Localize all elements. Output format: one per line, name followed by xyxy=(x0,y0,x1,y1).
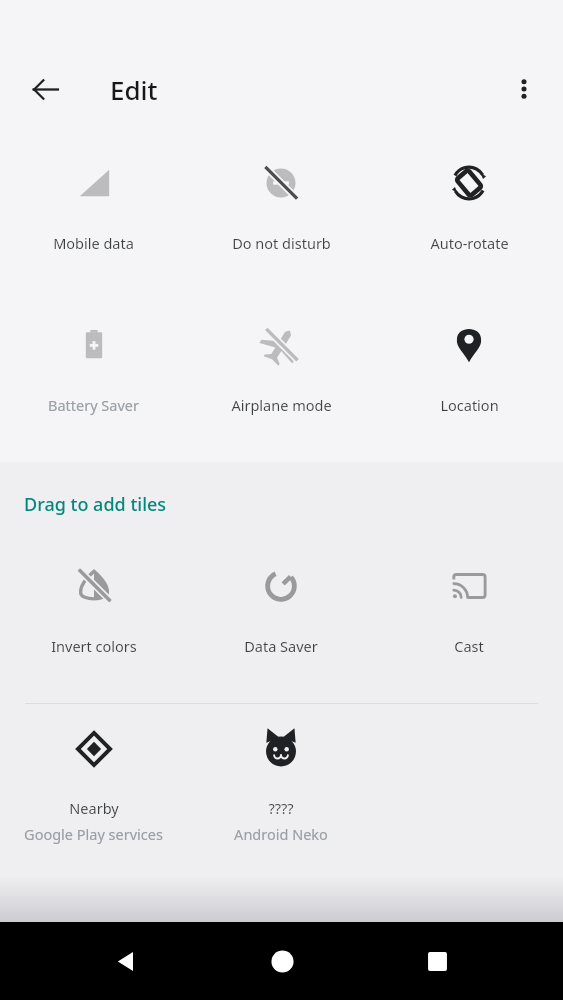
button[interactable]: Do not disturb xyxy=(187,138,375,300)
button[interactable]: Back xyxy=(19,63,71,115)
staticText: Battery Saver xyxy=(48,395,139,415)
staticText: Do not disturb xyxy=(232,233,331,253)
button[interactable]: Data Saver xyxy=(187,541,375,703)
staticText: Drag to add tiles xyxy=(24,492,167,517)
button[interactable]: Battery Saver xyxy=(0,300,187,462)
button[interactable]: Mobile data xyxy=(0,138,187,300)
staticText: Nearby xyxy=(69,798,119,818)
staticText: Data Saver xyxy=(244,636,318,656)
button[interactable]: ???? xyxy=(187,704,375,844)
staticText: Android Neko xyxy=(234,824,328,844)
button[interactable]: Cast xyxy=(375,541,563,703)
staticText: Edit xyxy=(110,72,158,107)
button[interactable]: Auto-rotate xyxy=(375,138,563,300)
staticText: Google Play services xyxy=(24,824,163,844)
staticText: Invert colors xyxy=(51,636,137,656)
staticText: Location xyxy=(440,395,499,415)
button[interactable]: Home xyxy=(252,931,312,991)
staticText: Mobile data xyxy=(53,233,134,253)
button[interactable]: Invert colors xyxy=(0,541,187,703)
staticText: Cast xyxy=(454,636,484,656)
button[interactable]: Location xyxy=(375,300,563,462)
staticText: Airplane mode xyxy=(231,395,332,415)
button[interactable]: Airplane mode xyxy=(187,300,375,462)
staticText: Auto-rotate xyxy=(430,233,509,253)
button[interactable]: Back xyxy=(96,931,156,991)
button[interactable]: Recents xyxy=(407,931,467,991)
button[interactable]: Nearby xyxy=(0,704,187,844)
button[interactable]: More options xyxy=(498,63,550,115)
staticText: ???? xyxy=(268,798,294,818)
